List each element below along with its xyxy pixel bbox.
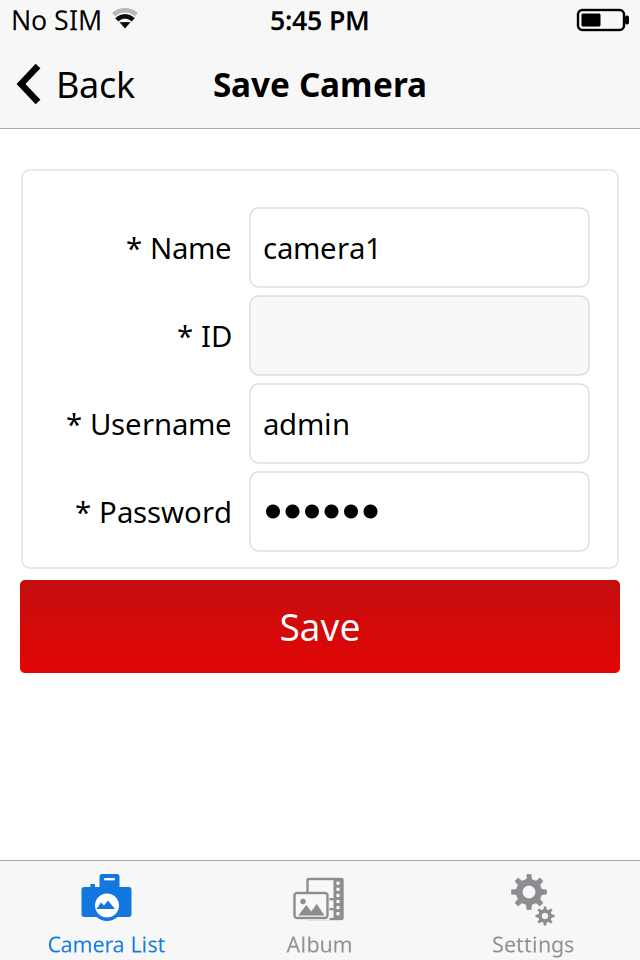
button[interactable]: Back — [0, 40, 149, 128]
button[interactable]: Album — [213, 861, 426, 960]
staticText: 5:45 PM — [270, 2, 370, 38]
staticText: * Username — [66, 404, 232, 443]
button[interactable]: Camera List — [0, 861, 213, 960]
staticText: Settings — [492, 930, 574, 958]
staticText: * Name — [126, 228, 232, 267]
staticText: Save Camera — [213, 62, 427, 106]
staticText: Back — [56, 60, 135, 108]
staticText: Save — [279, 602, 360, 651]
staticText: camera1 — [263, 228, 382, 267]
button[interactable]: Settings — [426, 861, 640, 960]
staticText: No SIM — [11, 2, 102, 38]
staticText: * ID — [177, 316, 232, 355]
staticText: * Password — [75, 492, 232, 531]
staticText: Album — [286, 930, 352, 958]
button[interactable]: Save — [20, 580, 620, 673]
staticText: admin — [263, 404, 350, 443]
staticText: Camera List — [47, 930, 165, 958]
